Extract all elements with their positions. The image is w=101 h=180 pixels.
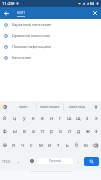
staticText: в xyxy=(23,128,26,135)
button[interactable]: капельщ xyxy=(64,101,90,112)
staticText: р xyxy=(50,128,54,135)
button[interactable]: е xyxy=(38,112,47,124)
button[interactable]: ж xyxy=(83,124,92,138)
staticText: ю xyxy=(84,142,88,149)
staticText: н xyxy=(50,115,54,122)
staticText: л xyxy=(68,128,71,135)
staticText: капельник xyxy=(40,104,60,109)
staticText: Русский xyxy=(49,159,62,163)
button[interactable]: Бархатный капельник xyxy=(0,19,101,30)
staticText: ш xyxy=(67,115,72,122)
staticText: щ xyxy=(76,115,81,122)
staticText: й xyxy=(3,115,7,122)
staticText: б xyxy=(75,142,78,149)
button[interactable]: Back xyxy=(0,7,13,19)
staticText: Помощи кафельщика xyxy=(12,44,51,49)
button[interactable]: , xyxy=(11,152,27,170)
staticText: с xyxy=(30,142,33,149)
staticText: г xyxy=(59,115,62,122)
button[interactable]: кап xyxy=(17,7,25,19)
staticText: ?123 xyxy=(2,159,10,164)
button[interactable]: м xyxy=(36,138,45,152)
staticText: ч xyxy=(21,142,24,149)
button[interactable]: д xyxy=(74,124,83,138)
button[interactable]: ч xyxy=(18,138,27,152)
button[interactable]: п xyxy=(38,124,47,138)
button[interactable]: Clear xyxy=(89,7,101,19)
staticText: ь xyxy=(66,142,69,149)
button[interactable]: ы xyxy=(10,124,20,138)
button[interactable]: ф xyxy=(0,124,10,138)
button[interactable]: т xyxy=(54,138,63,152)
staticText: 11:23 xyxy=(2,1,13,7)
button[interactable]: к xyxy=(29,112,38,124)
button[interactable]: Дровяной капельник xyxy=(0,30,101,41)
button[interactable]: х xyxy=(92,112,101,124)
button[interactable]: Капельник xyxy=(0,52,101,63)
staticText: м xyxy=(39,142,43,149)
button[interactable]: о xyxy=(56,124,65,138)
staticText: т xyxy=(57,142,60,149)
button[interactable]: н xyxy=(47,112,56,124)
staticText: Дровяной капельник xyxy=(12,33,50,38)
button[interactable]: и xyxy=(45,138,54,152)
button[interactable]: б xyxy=(72,138,81,152)
staticText: х xyxy=(95,115,98,122)
staticText: ц xyxy=(13,115,17,122)
staticText: а xyxy=(32,128,35,135)
button[interactable]: Помощи кафельщика xyxy=(0,41,101,52)
staticText: ы xyxy=(13,128,17,135)
button[interactable]: ь xyxy=(63,138,72,152)
staticText: кап xyxy=(17,9,25,15)
staticText: к xyxy=(32,115,35,122)
staticText: капе xyxy=(19,104,28,109)
button[interactable]: ц xyxy=(10,112,20,124)
button[interactable]: з xyxy=(83,112,92,124)
button[interactable]: щ xyxy=(74,112,83,124)
staticText: ж xyxy=(86,128,90,135)
button[interactable]: Google xyxy=(0,101,10,112)
staticText: 84 xyxy=(90,1,95,6)
button[interactable]: в xyxy=(20,124,29,138)
staticText: , xyxy=(18,158,20,164)
staticText: и xyxy=(48,142,52,149)
button[interactable]: ю xyxy=(81,138,90,152)
button[interactable]: у xyxy=(20,112,29,124)
button[interactable]: р xyxy=(47,124,56,138)
button[interactable]: Search xyxy=(84,157,99,166)
staticText: Капельник xyxy=(12,55,32,60)
button[interactable]: капе xyxy=(10,101,36,112)
button[interactable]: э xyxy=(92,124,101,138)
staticText: э xyxy=(95,128,98,135)
button[interactable]: Voice search xyxy=(90,101,101,112)
button[interactable]: капельник xyxy=(37,101,63,112)
button[interactable]: а xyxy=(29,124,38,138)
button[interactable]: ?123 xyxy=(0,152,11,170)
button[interactable]: Change language xyxy=(27,152,37,170)
button[interactable]: Backspace xyxy=(90,138,101,152)
staticText: д xyxy=(77,128,81,135)
staticText: . xyxy=(78,158,80,164)
staticText: о xyxy=(59,128,62,135)
button[interactable]: г xyxy=(56,112,65,124)
staticText: у xyxy=(23,115,26,122)
button[interactable]: с xyxy=(27,138,36,152)
staticText: я xyxy=(12,142,15,149)
staticText: п xyxy=(41,128,45,135)
staticText: ф xyxy=(3,128,7,135)
button[interactable]: й xyxy=(0,112,10,124)
button[interactable]: Русский xyxy=(37,158,73,164)
button[interactable]: л xyxy=(65,124,74,138)
staticText: е xyxy=(41,115,44,122)
button[interactable]: я xyxy=(9,138,18,152)
button[interactable]: . xyxy=(73,152,84,170)
staticText: капельщ xyxy=(69,104,86,109)
button[interactable]: Shift xyxy=(0,138,9,152)
staticText: Бархатный капельник xyxy=(12,22,52,27)
button[interactable]: ш xyxy=(65,112,74,124)
staticText: з xyxy=(86,115,89,122)
